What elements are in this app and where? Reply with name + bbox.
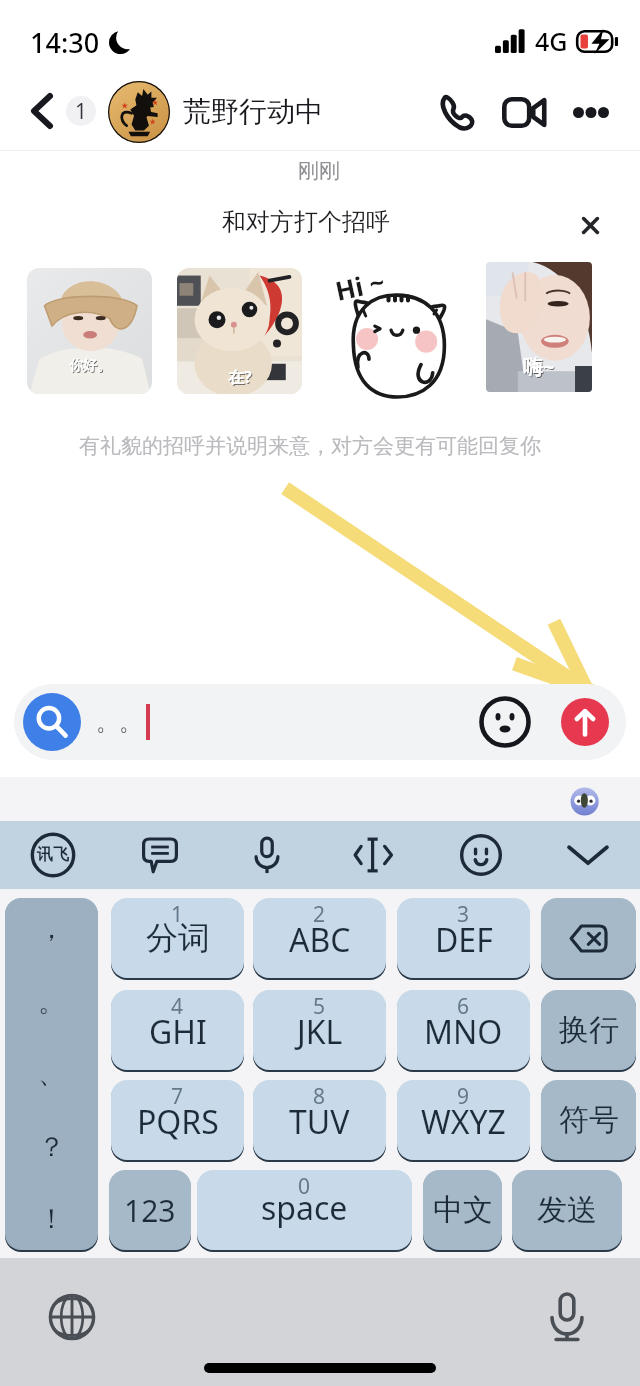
button[interactable]: MNO [397,990,530,1070]
button[interactable]: Input method [20,828,86,882]
button[interactable]: Voice input [539,1289,595,1345]
staticText: JKL [297,1010,343,1054]
staticText: 5 [313,992,326,1021]
button[interactable]: Video call [499,87,549,137]
staticText: 1 [171,900,184,929]
staticText: 在? [229,367,253,389]
staticText: 在? [228,366,252,388]
button[interactable]: Voice call [432,87,482,137]
staticText: 6 [457,992,470,1021]
staticText: 分词 [146,918,210,958]
staticText: 你好。 [69,357,111,375]
staticText: ABC [289,918,351,962]
button[interactable]: 符号 [541,1080,636,1160]
staticText: 符号 [559,1101,619,1139]
button[interactable]: Emoji [478,695,532,749]
button[interactable]: Close greeting suggestions [568,203,612,247]
button[interactable]: 分词 [111,898,244,978]
button[interactable]: Send [561,698,609,746]
button[interactable]: TUV [253,1080,386,1160]
staticText: 。 [119,708,142,737]
staticText: 14:30 [30,24,100,61]
staticText: 嗨~ [523,353,555,380]
button[interactable]: 中文 [423,1170,502,1250]
staticText: 7 [171,1082,184,1111]
staticText: 换行 [559,1011,619,1049]
staticText: ， [38,912,65,946]
button[interactable]: 123 [109,1170,191,1250]
staticText: 有礼貌的招呼并说明来意，对方会更有可能回复你 [0,433,630,459]
staticText: 1 [75,97,88,126]
button[interactable]: Change language [44,1289,100,1345]
button[interactable]: WXYZ [397,1080,530,1160]
staticText: 刚刚 [0,158,639,184]
staticText: MNO [424,1010,503,1054]
button[interactable]: DEF [397,898,530,978]
staticText: 、 [38,1057,65,1091]
staticText: PQRS [137,1100,219,1144]
button[interactable]: space [197,1170,412,1250]
button[interactable]: Emoji [448,828,514,882]
button[interactable]: 换行 [541,990,636,1070]
staticText: 。 [96,708,119,737]
staticText: ？ [38,1130,65,1164]
button[interactable]: Greeting sticker: 你好 [27,268,152,394]
staticText: 4G [535,24,568,58]
button[interactable]: Greeting sticker: 嗨~ [486,262,592,392]
button[interactable]: ABC [253,898,386,978]
button[interactable]: Back [18,87,66,135]
button[interactable]: PQRS [111,1080,244,1160]
staticText: space [261,1186,348,1230]
button[interactable]: Search [23,693,81,751]
button[interactable]: JKL [253,990,386,1070]
staticText: 荒野行动中 [183,94,323,129]
staticText: 8 [313,1082,326,1111]
button[interactable]: Punctuation [5,898,98,1250]
button[interactable]: GHI [111,990,244,1070]
button[interactable]: Voice input [234,828,300,882]
staticText: ！ [38,1202,65,1236]
staticText: 中文 [433,1191,493,1229]
staticText: 3 [457,900,470,929]
staticText: WXYZ [421,1100,506,1144]
staticText: 9 [457,1082,470,1111]
staticText: 123 [124,1190,176,1231]
button[interactable]: Backspace [541,898,636,978]
staticText: 。 [38,985,65,1019]
staticText: GHI [149,1010,207,1054]
button[interactable]: 发送 [512,1170,622,1250]
staticText: 0 [298,1172,311,1201]
staticText: 嗨~ [524,354,556,381]
staticText: 2 [313,900,326,929]
button[interactable]: Move cursor [341,828,407,882]
button[interactable]: Greeting sticker: 在? [177,268,302,394]
staticText: 发送 [537,1191,597,1229]
staticText: DEF [435,918,493,962]
button[interactable]: 1 [66,96,96,126]
button[interactable]: Greeting sticker: Hi [330,262,460,397]
staticText: 4 [171,992,184,1021]
button[interactable]: Contact avatar [108,81,170,143]
staticText: 你好。 [70,358,112,376]
button[interactable]: Hide keyboard [555,828,621,882]
staticText: Hi ~ [332,263,388,308]
staticText: 讯飞 [37,845,69,865]
button[interactable]: More options [566,87,616,137]
staticText: 和对方打个招呼 [0,207,626,237]
button[interactable]: Text settings [127,828,193,882]
staticText: TUV [289,1100,350,1144]
